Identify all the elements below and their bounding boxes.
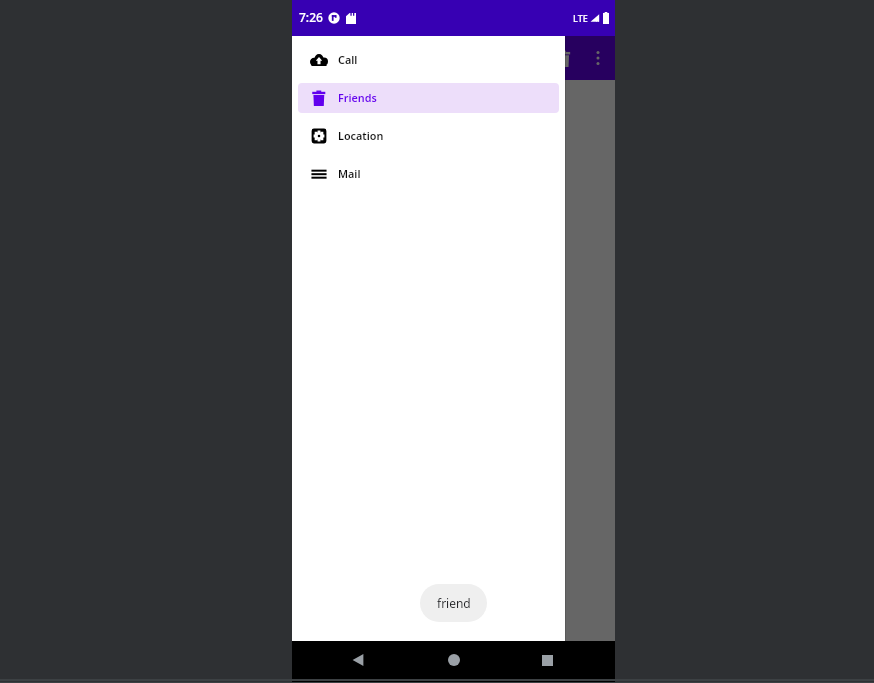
button[interactable]: Delete <box>543 38 583 78</box>
staticText: LTE <box>573 12 588 24</box>
button[interactable]: More options <box>583 43 613 73</box>
button[interactable]: friend <box>420 584 487 622</box>
staticText: Friends <box>338 90 377 105</box>
button[interactable]: Call <box>298 45 559 75</box>
staticText: friend <box>437 595 471 611</box>
button[interactable]: Home <box>439 645 469 675</box>
button[interactable]: Back <box>338 645 368 675</box>
staticText: 7:26 <box>299 9 323 25</box>
button[interactable]: Recents <box>539 645 569 675</box>
staticText: Location <box>338 128 384 143</box>
staticText: Call <box>338 52 358 67</box>
button[interactable]: Mail <box>298 159 559 189</box>
button[interactable]: Location <box>298 121 559 151</box>
staticText: Mail <box>338 166 361 181</box>
button[interactable]: Friends <box>298 83 559 113</box>
